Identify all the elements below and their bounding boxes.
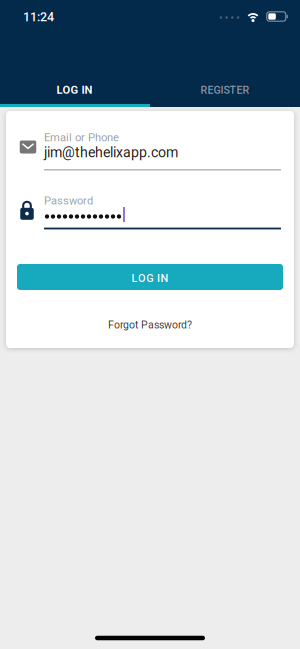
button[interactable]: LOG IN [17,264,283,290]
staticText: Email or Phone [44,131,119,144]
staticText: Password [44,194,93,207]
button[interactable]: Forgot Password? [80,315,220,335]
staticText: LOG IN [56,83,92,96]
staticText: 11:24 [23,10,54,24]
staticText: jim@thehelixapp.com [44,144,178,161]
staticText: REGISTER [200,84,249,96]
staticText: Forgot Password? [108,319,192,331]
button[interactable]: LOG IN [0,70,149,110]
button[interactable]: REGISTER [150,70,300,110]
staticText: LOG IN [131,272,168,285]
